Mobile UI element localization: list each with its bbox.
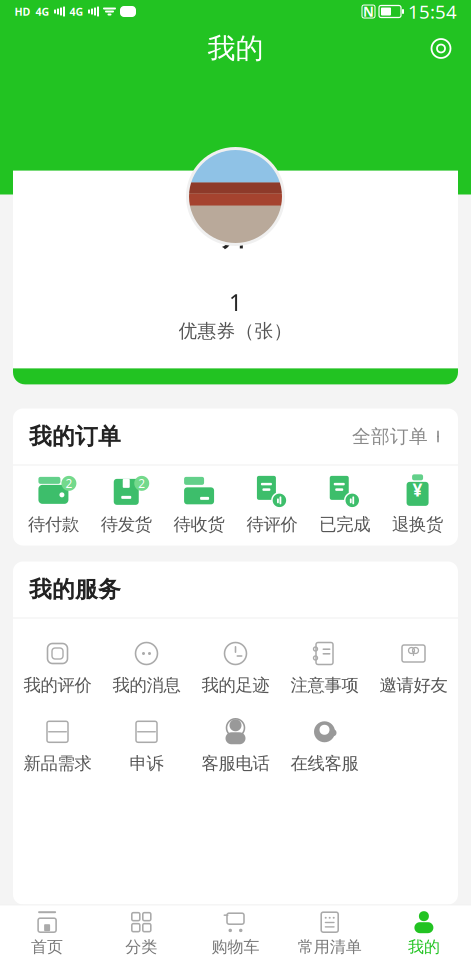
button[interactable]: 已完成: [308, 468, 381, 543]
button[interactable]: 分类: [94, 904, 188, 960]
staticText: 分类: [125, 937, 157, 957]
button[interactable]: 首页: [0, 904, 94, 960]
staticText: 待发货: [101, 514, 152, 535]
staticText: 1: [229, 287, 242, 317]
staticText: 客服电话: [201, 753, 269, 774]
staticText: 待付款: [28, 514, 79, 535]
button[interactable]: 全部订单: [352, 421, 442, 452]
staticText: 我的: [408, 937, 440, 957]
button[interactable]: 新品需求: [13, 707, 102, 785]
staticText: 我的足迹: [201, 674, 269, 696]
button[interactable]: 在线客服: [280, 707, 369, 785]
staticText: 首页: [31, 937, 63, 957]
button[interactable]: 注意事项: [280, 628, 369, 707]
staticText: 我的服务: [29, 576, 121, 603]
staticText: 2: [65, 475, 72, 491]
staticText: 注意事项: [290, 674, 358, 696]
button[interactable]: 申诉: [102, 707, 191, 785]
staticText: 待评价: [246, 514, 297, 535]
button[interactable]: 常用清单: [283, 904, 377, 960]
staticText: 优惠券（张）: [178, 319, 292, 342]
staticText: 在线客服: [290, 753, 358, 774]
staticText: N: [363, 3, 374, 20]
staticText: 申诉: [129, 753, 163, 774]
button[interactable]: 购物车: [188, 904, 283, 960]
staticText: 15:54: [408, 0, 457, 24]
button[interactable]: 我的评价: [13, 628, 102, 707]
staticText: ¥: [413, 478, 423, 501]
button[interactable]: 我的: [377, 904, 471, 960]
button[interactable]: 邀请好友: [369, 628, 458, 707]
staticText: 退换货: [392, 514, 443, 535]
staticText: 购物车: [211, 937, 259, 957]
button[interactable]: 待收货: [163, 468, 235, 543]
staticText: 2: [138, 475, 145, 491]
button[interactable]: 我的消息: [102, 628, 191, 707]
staticText: 全部订单: [352, 425, 428, 448]
staticText: 我的: [207, 31, 263, 66]
staticText: 片: [222, 221, 249, 253]
staticText: 4G: [35, 4, 49, 19]
staticText: 邀请好友: [379, 674, 447, 696]
button[interactable]: Settings: [419, 26, 463, 70]
staticText: 4G: [69, 4, 83, 19]
button[interactable]: 2: [17, 468, 90, 543]
staticText: 待收货: [174, 514, 225, 535]
staticText: 我的订单: [29, 423, 121, 450]
button[interactable]: 我的足迹: [191, 628, 280, 707]
button[interactable]: ¥: [381, 468, 454, 543]
staticText: 常用清单: [298, 937, 362, 957]
button[interactable]: 2: [90, 468, 163, 543]
button[interactable]: 客服电话: [191, 707, 280, 785]
staticText: 我的消息: [112, 674, 180, 696]
staticText: HD: [14, 4, 30, 19]
button[interactable]: 1: [13, 285, 458, 344]
staticText: 新品需求: [23, 753, 91, 774]
staticText: 已完成: [319, 514, 370, 535]
staticText: 我的评价: [23, 674, 91, 696]
button[interactable]: 待评价: [235, 468, 308, 543]
